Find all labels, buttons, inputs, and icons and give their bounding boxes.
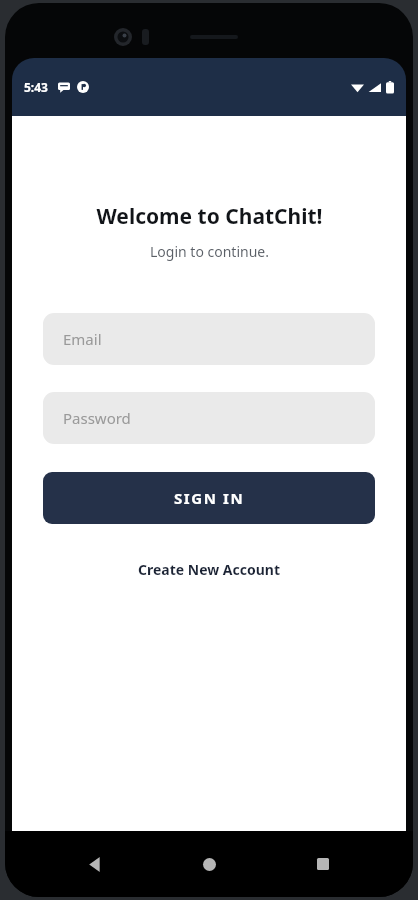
button[interactable]: Home — [185, 840, 233, 888]
staticText: 5:43 — [24, 79, 48, 95]
button[interactable]: Recent apps — [299, 840, 347, 888]
staticText: Password — [63, 408, 131, 428]
staticText: Welcome to ChatChit! — [96, 202, 323, 231]
button[interactable]: Password — [43, 392, 375, 444]
staticText: Email — [63, 329, 102, 349]
staticText: SIGN IN — [174, 488, 245, 508]
button[interactable]: Email — [43, 313, 375, 365]
button[interactable]: SIGN IN — [43, 472, 375, 524]
button[interactable]: Back — [71, 840, 119, 888]
button[interactable]: Create New Account — [124, 552, 295, 587]
staticText: Create New Account — [138, 560, 281, 579]
staticText: Login to continue. — [150, 242, 269, 261]
